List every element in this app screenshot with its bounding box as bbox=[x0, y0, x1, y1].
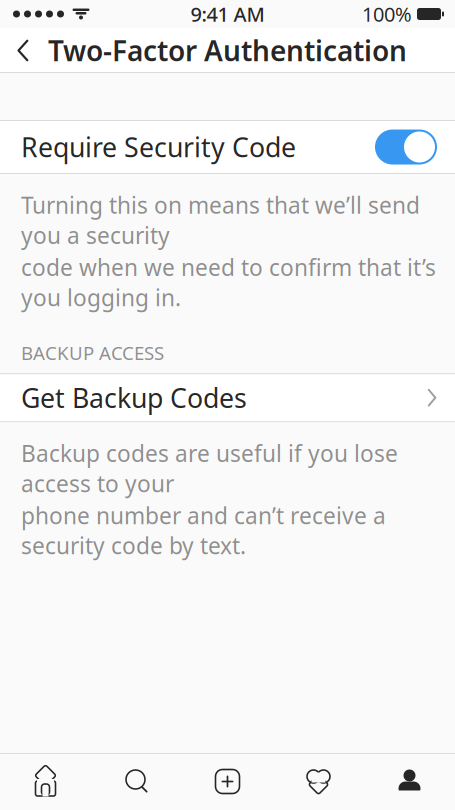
staticText: BACKUP ACCESS bbox=[21, 340, 164, 365]
staticText: 100% bbox=[362, 1, 412, 27]
button[interactable]: New Post bbox=[182, 753, 273, 810]
staticText: Turning this on means that we’ll send yo… bbox=[21, 190, 420, 250]
staticText: 9:41 AM bbox=[190, 1, 264, 27]
button[interactable]: Require Security Code bbox=[0, 120, 455, 174]
staticText: Two-Factor Authentication bbox=[48, 32, 407, 69]
staticText: Backup codes are useful if you lose acce… bbox=[21, 438, 398, 498]
staticText: code when we need to confirm that it’s y… bbox=[21, 252, 436, 312]
button[interactable]: Get Backup Codes bbox=[0, 373, 455, 422]
button[interactable]: Activity bbox=[273, 753, 364, 810]
button[interactable]: Profile bbox=[364, 753, 455, 810]
staticText: phone number and can’t receive a securit… bbox=[21, 500, 386, 561]
button[interactable]: Back bbox=[0, 28, 46, 73]
staticText: Require Security Code bbox=[21, 129, 296, 165]
staticText: Get Backup Codes bbox=[21, 380, 247, 415]
button[interactable]: Home bbox=[0, 753, 91, 810]
button[interactable]: Search bbox=[91, 753, 182, 810]
